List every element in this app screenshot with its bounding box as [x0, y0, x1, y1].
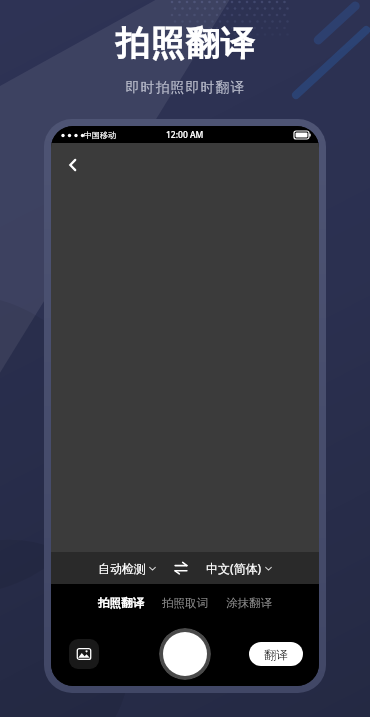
button[interactable]: 交换语言 [170, 557, 192, 579]
staticText: 中国移动 [84, 130, 116, 140]
button[interactable]: 中文(简体) [204, 557, 274, 579]
button[interactable]: 翻译 [249, 642, 303, 666]
button[interactable]: 返回 [57, 149, 89, 181]
staticText: 涂抹翻译 [226, 596, 272, 610]
staticText: 12:00 AM [166, 129, 204, 141]
button[interactable]: 自动检测 [96, 558, 158, 579]
staticText: 拍照取词 [162, 596, 208, 610]
button[interactable]: 拍照取词 [160, 594, 210, 612]
staticText: 即时拍照即时翻译 [125, 79, 245, 97]
button[interactable]: 相册 [69, 639, 99, 669]
staticText: 中文(简体) [206, 560, 262, 576]
staticText: 拍照翻译 [98, 596, 144, 610]
staticText: 自动检测 [98, 561, 146, 576]
button[interactable]: 拍照翻译 [96, 594, 146, 612]
staticText: 翻译 [264, 647, 288, 662]
staticText: 拍照翻译 [115, 22, 255, 65]
button[interactable]: 涂抹翻译 [224, 594, 274, 612]
button[interactable]: 拍照 [159, 628, 211, 680]
